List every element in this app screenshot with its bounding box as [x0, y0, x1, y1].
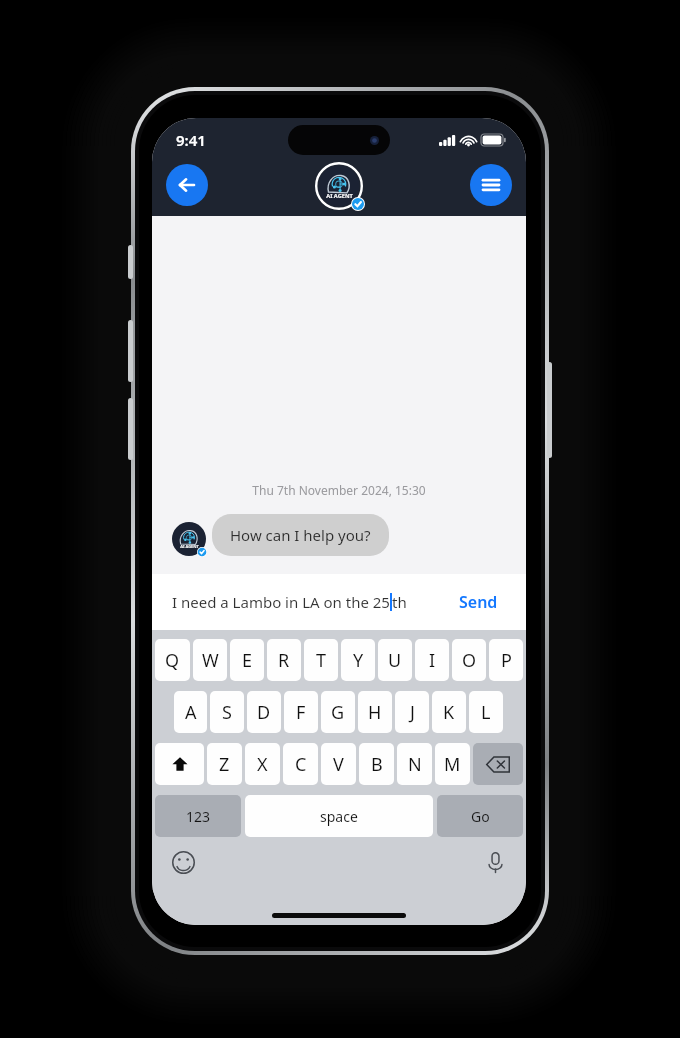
staticText: M	[444, 752, 461, 777]
button[interactable]: Menu	[470, 164, 512, 206]
button[interactable]: How can I help you?	[212, 514, 389, 556]
button[interactable]: Shift	[155, 743, 204, 785]
button[interactable]: D	[247, 691, 281, 733]
staticText: Thu 7th November 2024, 15:30	[152, 482, 526, 498]
button[interactable]: V	[321, 743, 356, 785]
button[interactable]: F	[284, 691, 318, 733]
staticText: 123	[186, 807, 211, 826]
button[interactable]: M	[435, 743, 470, 785]
staticText: H	[368, 700, 382, 725]
staticText: E	[242, 648, 253, 673]
staticText: W	[202, 648, 219, 673]
staticText: V	[333, 752, 344, 777]
staticText: O	[462, 648, 477, 673]
button[interactable]: space	[245, 795, 433, 837]
staticText: Send	[459, 591, 498, 613]
staticText: C	[295, 752, 307, 777]
staticText: X	[257, 752, 268, 777]
button[interactable]: Emoji	[166, 845, 200, 879]
staticText: A	[185, 700, 197, 725]
staticText: U	[388, 648, 402, 673]
button[interactable]: 123	[155, 795, 241, 837]
button[interactable]: Go	[437, 795, 523, 837]
button[interactable]: AI Agent profile	[315, 162, 363, 210]
button[interactable]: G	[321, 691, 355, 733]
button[interactable]: Back	[166, 164, 208, 206]
button[interactable]: Z	[207, 743, 242, 785]
button[interactable]: L	[469, 691, 503, 733]
button[interactable]: Send	[451, 585, 506, 619]
staticText: F	[296, 700, 306, 725]
button[interactable]: J	[395, 691, 429, 733]
staticText: I need a Lambo in LA on the 25	[172, 592, 390, 612]
button[interactable]: Backspace	[473, 743, 523, 785]
staticText: J	[410, 700, 415, 725]
staticText: th	[392, 592, 407, 612]
button[interactable]: A	[174, 691, 207, 733]
button[interactable]: Q	[155, 639, 190, 681]
staticText: 9:41	[176, 130, 206, 150]
button[interactable]: K	[432, 691, 466, 733]
button[interactable]: T	[304, 639, 338, 681]
button[interactable]: O	[452, 639, 486, 681]
button[interactable]: I	[415, 639, 449, 681]
staticText: N	[408, 752, 422, 777]
staticText: AI AGENT	[326, 192, 353, 200]
staticText: I	[429, 648, 436, 673]
button[interactable]: N	[397, 743, 432, 785]
staticText: R	[278, 648, 290, 673]
staticText: K	[443, 700, 455, 725]
staticText: B	[371, 752, 383, 777]
button[interactable]: C	[283, 743, 318, 785]
staticText: Z	[219, 752, 230, 777]
button[interactable]: Y	[341, 639, 375, 681]
button[interactable]: X	[245, 743, 280, 785]
button[interactable]: P	[489, 639, 523, 681]
button[interactable]: B	[359, 743, 394, 785]
staticText: Go	[471, 807, 490, 826]
button[interactable]: R	[267, 639, 301, 681]
staticText: AI AGENT	[180, 544, 199, 549]
button[interactable]: Dictate	[478, 845, 512, 879]
staticText: S	[222, 700, 232, 725]
button[interactable]: S	[210, 691, 244, 733]
button[interactable]: H	[358, 691, 392, 733]
staticText: How can I help you?	[230, 525, 371, 545]
button[interactable]: E	[230, 639, 264, 681]
staticText: Q	[165, 648, 180, 673]
staticText: G	[331, 700, 345, 725]
staticText: Y	[353, 648, 364, 673]
button[interactable]: I need a Lambo in LA on the 25	[172, 592, 451, 612]
staticText: space	[320, 807, 358, 826]
button[interactable]: U	[378, 639, 412, 681]
button[interactable]: W	[193, 639, 227, 681]
staticText: L	[481, 700, 491, 725]
staticText: T	[316, 648, 327, 673]
staticText: D	[257, 700, 271, 725]
staticText: P	[501, 648, 512, 673]
